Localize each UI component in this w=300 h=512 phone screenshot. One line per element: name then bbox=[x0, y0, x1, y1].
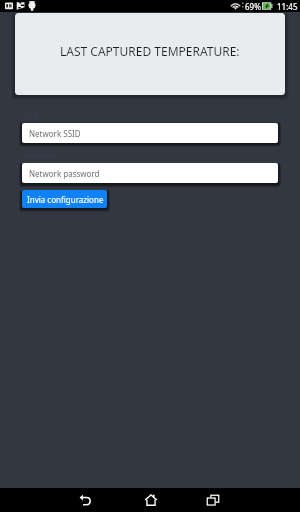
staticText: Network SSID bbox=[29, 128, 81, 139]
staticText: 11:45 bbox=[277, 1, 298, 12]
button[interactable]: Recent apps bbox=[198, 488, 228, 512]
button[interactable]: Network SSID bbox=[22, 123, 278, 143]
staticText: Invia configurazione bbox=[27, 194, 104, 205]
staticText: Network password bbox=[29, 168, 100, 179]
staticText: LAST CAPTURED TEMPERATURE: bbox=[60, 43, 240, 59]
button[interactable]: Back bbox=[70, 488, 100, 512]
button[interactable]: Network password bbox=[22, 163, 278, 183]
button[interactable]: Invia configurazione bbox=[22, 190, 107, 208]
button[interactable]: Home bbox=[136, 488, 166, 512]
staticText: 69% bbox=[245, 1, 261, 12]
